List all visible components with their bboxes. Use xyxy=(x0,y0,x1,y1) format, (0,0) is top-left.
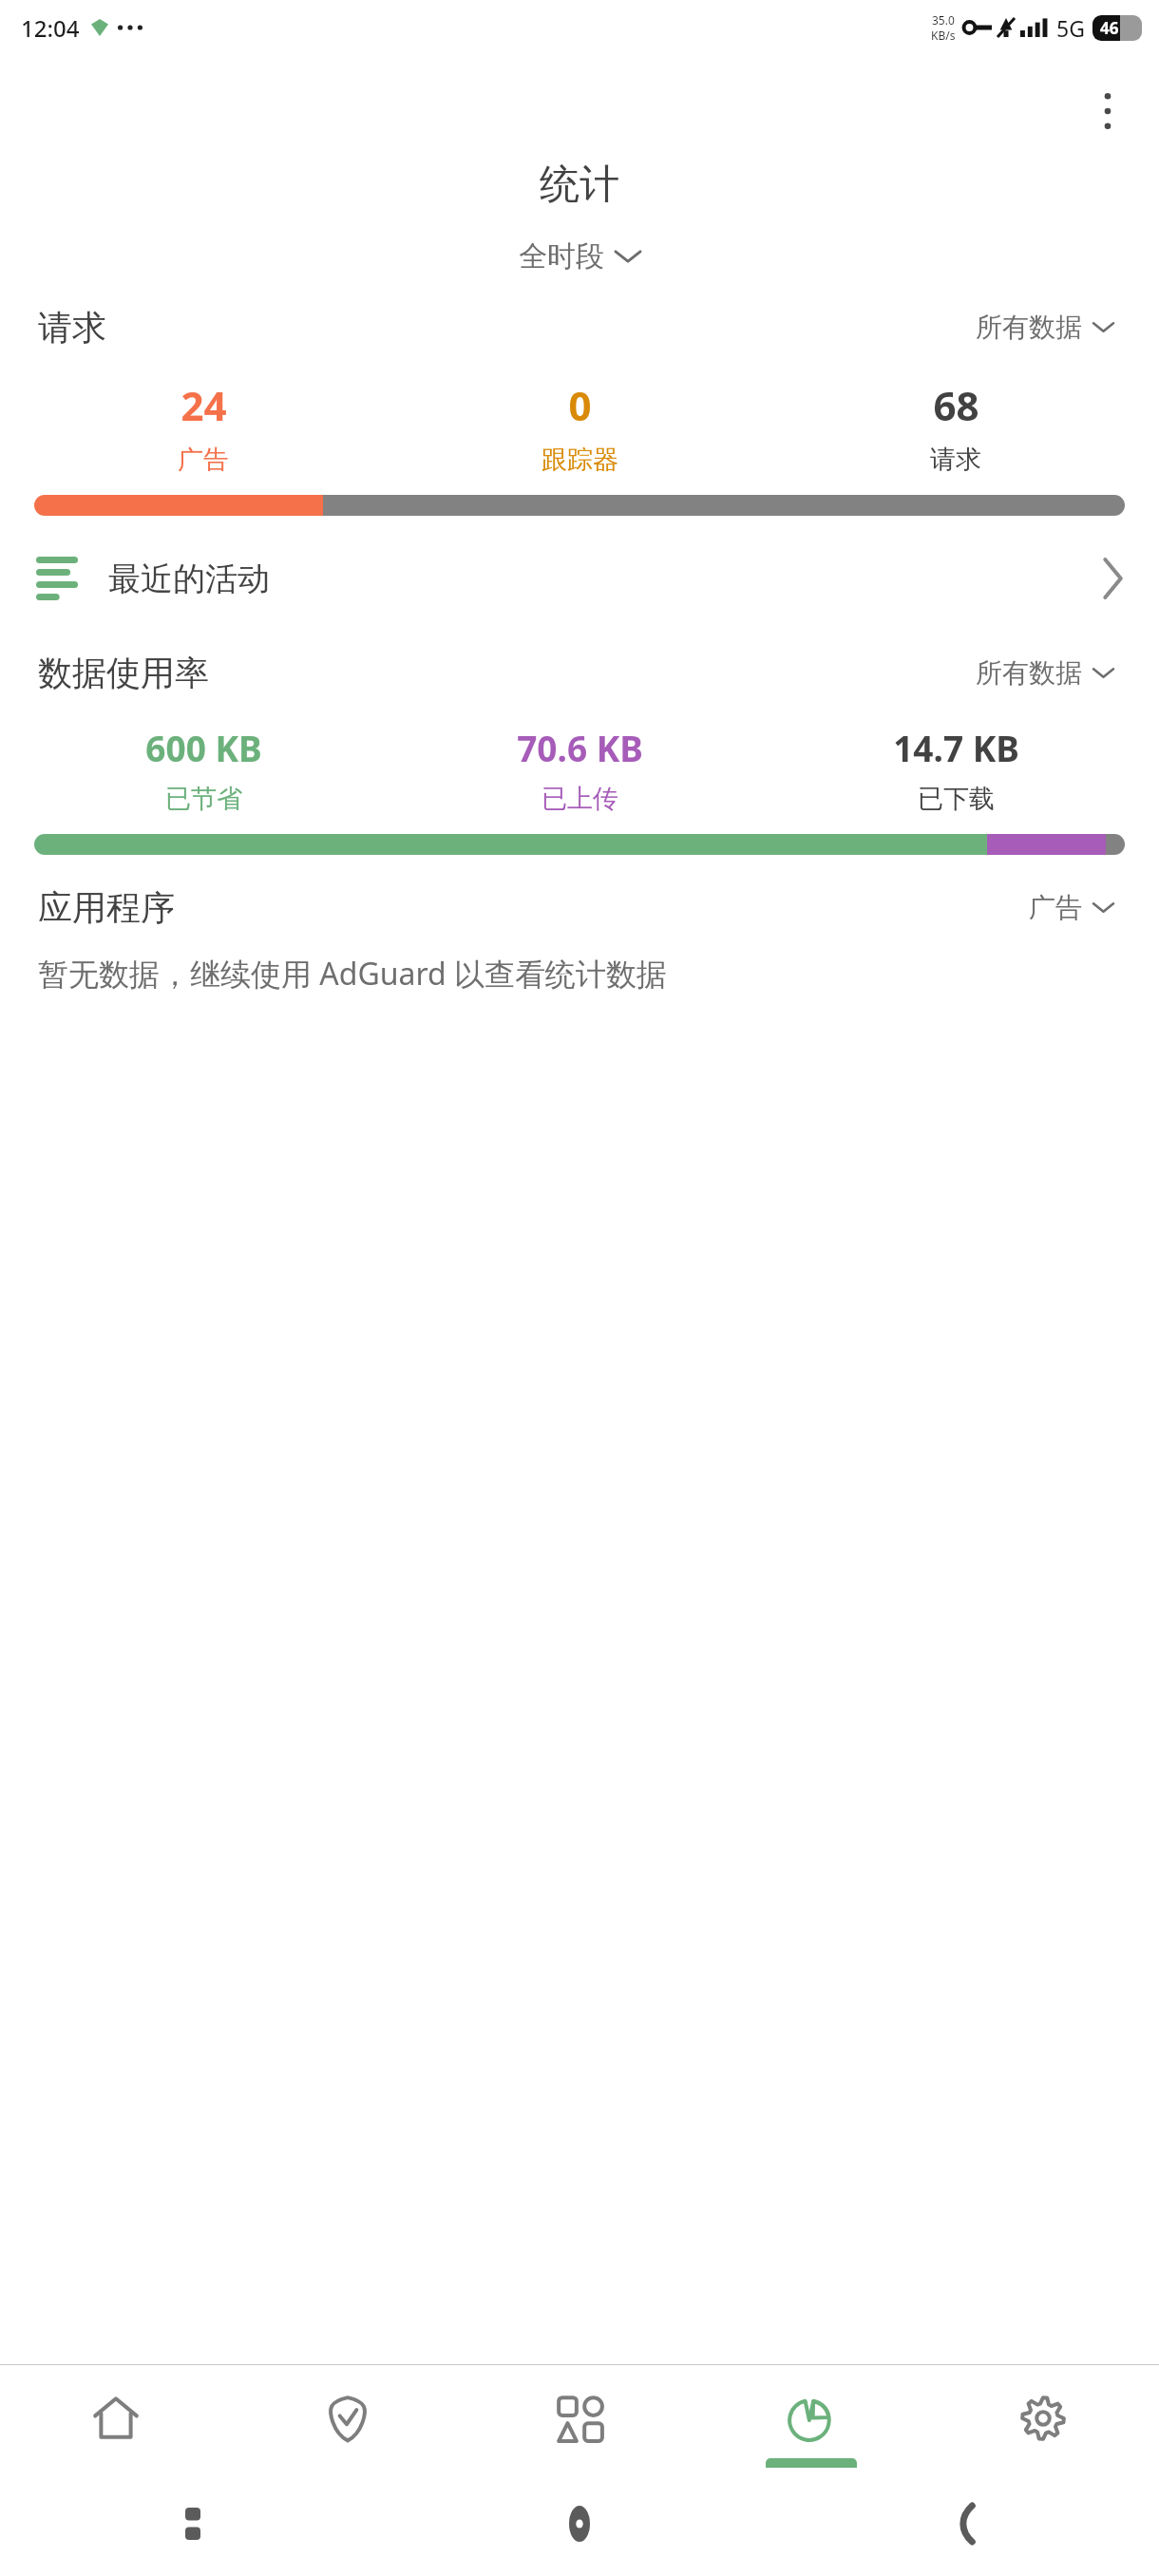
button[interactable]: 24 xyxy=(15,374,391,480)
staticText: 68 xyxy=(933,378,979,432)
button[interactable]: 0 xyxy=(391,374,768,480)
staticText: 12:04 xyxy=(21,12,80,44)
button[interactable]: 最近的活动 xyxy=(0,544,1159,613)
other: Recents xyxy=(185,2508,200,2540)
button[interactable]: 68 xyxy=(768,374,1144,480)
button[interactable]: Statistics xyxy=(695,2365,927,2472)
staticText: 跟踪器 xyxy=(541,444,618,476)
staticText: 24 xyxy=(180,378,227,432)
staticText: 最近的活动 xyxy=(108,559,270,599)
other: Back xyxy=(958,2506,975,2542)
button[interactable]: 600 KB xyxy=(15,720,391,819)
staticText: 0 xyxy=(568,378,592,432)
staticText: 数据使用率 xyxy=(38,652,209,694)
other: Home xyxy=(569,2506,590,2542)
other: Open xyxy=(1102,559,1123,597)
staticText: 全时段 xyxy=(519,238,604,275)
staticText: 广告 xyxy=(178,444,229,476)
button[interactable]: Home xyxy=(0,2365,232,2472)
staticText: 35.0 xyxy=(932,12,955,28)
staticText: 广告 xyxy=(1029,891,1082,924)
staticText: 70.6 KB xyxy=(517,724,643,771)
button[interactable]: More options xyxy=(1077,81,1138,142)
staticText: 所有数据 xyxy=(976,656,1082,690)
staticText: 已下载 xyxy=(918,783,995,815)
button[interactable]: 所有数据 xyxy=(968,651,1121,695)
staticText: 600 KB xyxy=(145,724,262,771)
staticText: 请求 xyxy=(38,306,106,349)
staticText: 应用程序 xyxy=(38,886,175,929)
button[interactable]: Apps xyxy=(464,2365,695,2472)
staticText: 已上传 xyxy=(541,783,618,815)
button[interactable]: Protection xyxy=(232,2365,464,2472)
button[interactable]: 14.7 KB xyxy=(768,720,1144,819)
button[interactable]: 广告 xyxy=(1021,885,1121,930)
button[interactable]: 全时段 xyxy=(509,233,650,280)
staticText: 统计 xyxy=(540,160,619,210)
button[interactable]: Settings xyxy=(927,2365,1159,2472)
staticText: 14.7 KB xyxy=(893,724,1019,771)
staticText: 46 xyxy=(1100,17,1119,39)
staticText: 已节省 xyxy=(165,783,242,815)
staticText: 所有数据 xyxy=(976,311,1082,344)
button[interactable]: 70.6 KB xyxy=(391,720,768,819)
button[interactable]: 所有数据 xyxy=(968,305,1121,350)
staticText: KB/s xyxy=(931,28,956,43)
staticText: 5G xyxy=(1056,13,1085,43)
staticText: 暂无数据，继续使用 AdGuard 以查看统计数据 xyxy=(38,953,668,994)
staticText: 请求 xyxy=(930,444,981,476)
